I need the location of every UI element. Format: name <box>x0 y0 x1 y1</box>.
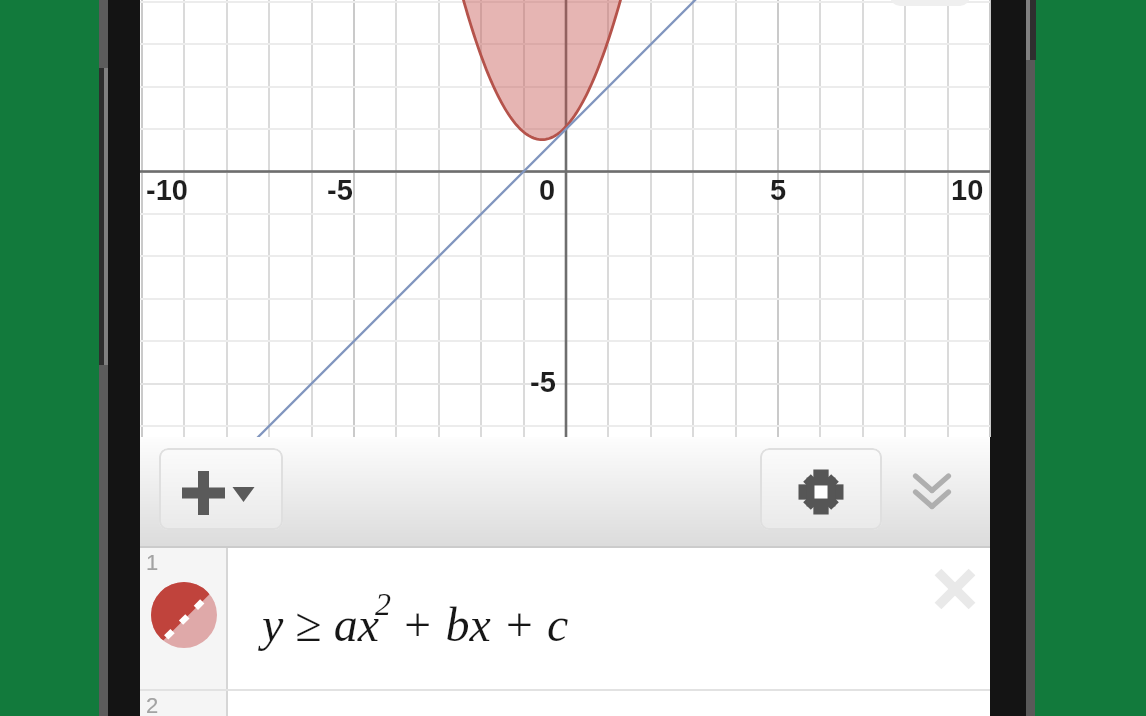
staticText: -5 <box>327 174 353 206</box>
staticText: 1 <box>146 550 159 575</box>
staticText: 2 <box>146 693 159 716</box>
button[interactable]: 2 <box>140 691 990 716</box>
staticText: 5 <box>770 174 787 206</box>
staticText: y ≥ ax <box>262 598 379 651</box>
staticText: -5 <box>530 366 556 398</box>
staticText: + bx + c <box>389 598 569 651</box>
staticText: 0 <box>539 174 556 206</box>
staticText: 10 <box>951 174 984 206</box>
button[interactable]: Zoom controls <box>890 0 970 6</box>
button[interactable]: Settings <box>760 448 882 530</box>
button[interactable]: Collapse panel <box>892 448 974 530</box>
button[interactable]: Add expression <box>159 448 283 530</box>
staticText: 2 <box>375 586 391 621</box>
button[interactable]: 1 <box>140 548 990 689</box>
button[interactable]: Delete expression <box>923 559 987 623</box>
staticText: -10 <box>146 174 188 206</box>
